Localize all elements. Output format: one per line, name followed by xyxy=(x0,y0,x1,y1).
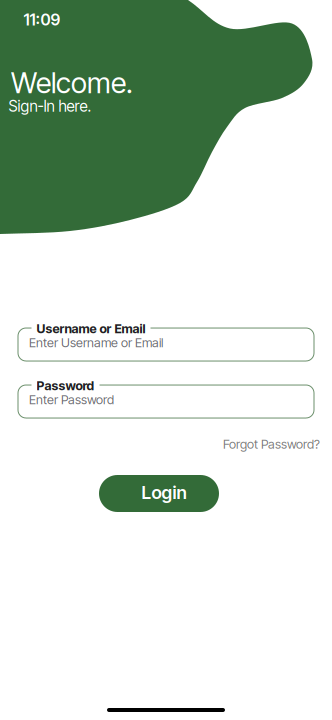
staticText: Enter Username or Email xyxy=(29,335,163,350)
staticText: Sign-In here. xyxy=(8,97,91,116)
button[interactable]: Login xyxy=(99,475,219,512)
button[interactable]: Forgot Password? xyxy=(223,436,320,452)
staticText: Enter Password xyxy=(29,392,114,407)
staticText: Welcome. xyxy=(11,65,133,100)
staticText: 11:09 xyxy=(23,10,60,29)
button[interactable]: Enter Username or Email xyxy=(18,328,314,361)
button[interactable]: Enter Password xyxy=(18,385,314,418)
staticText: Username or Email xyxy=(36,321,145,336)
staticText: Password xyxy=(36,378,94,393)
staticText: Login xyxy=(141,482,186,503)
staticText: Forgot Password? xyxy=(223,436,320,452)
